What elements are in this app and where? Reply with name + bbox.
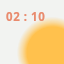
button[interactable]: Start timer [22, 20, 64, 64]
other: Start timer [0, 0, 64, 64]
button[interactable]: 02 : 10 [6, 9, 46, 25]
